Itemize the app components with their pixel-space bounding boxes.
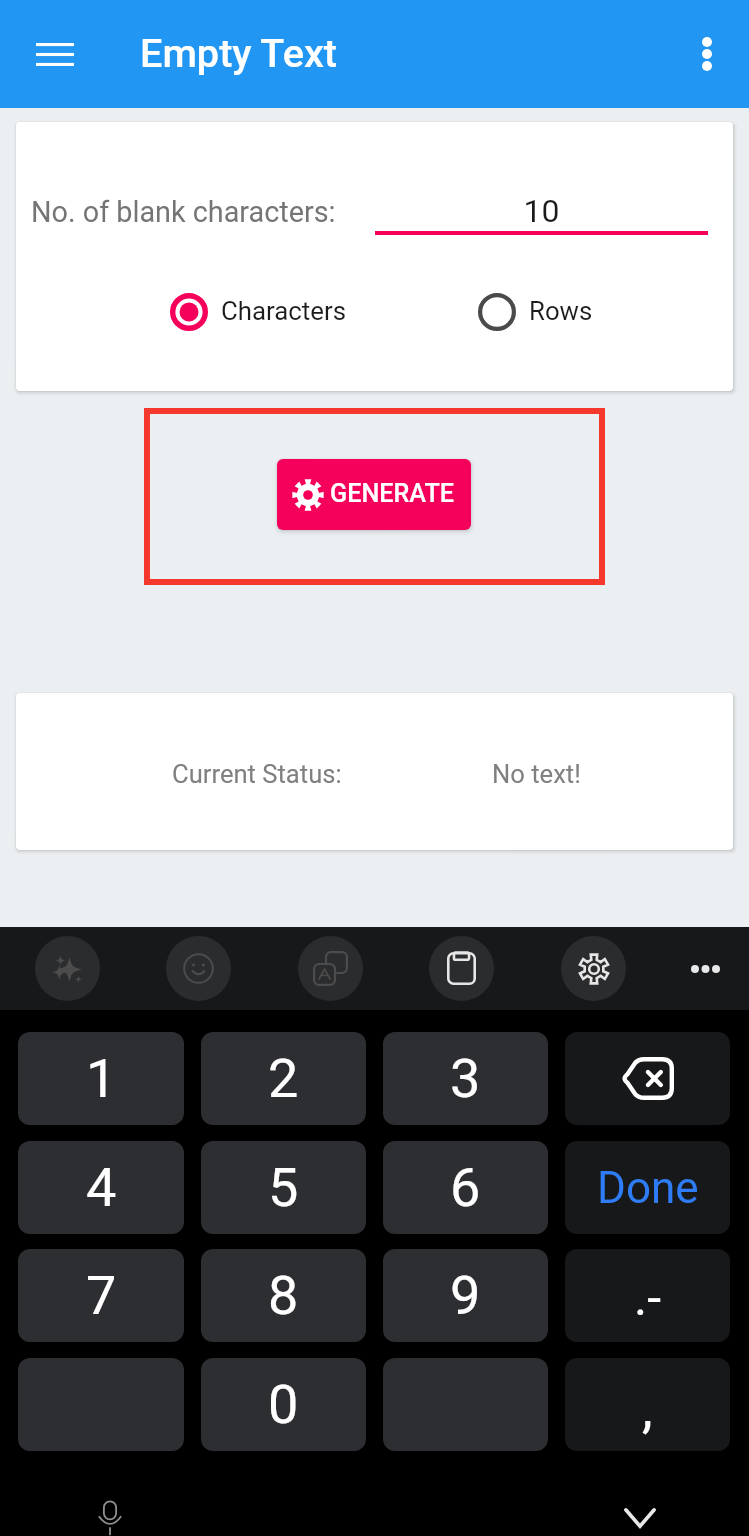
staticText: GENERATE xyxy=(330,479,455,509)
button[interactable]: Backspace xyxy=(565,1032,730,1125)
button[interactable]: 6 xyxy=(383,1141,548,1234)
button[interactable]: Open navigation drawer xyxy=(17,16,93,92)
button[interactable]: 3 xyxy=(383,1032,548,1125)
button[interactable]: More keyboard options xyxy=(673,937,737,1001)
staticText: No. of blank characters: xyxy=(31,195,336,229)
button[interactable]: 2 xyxy=(201,1032,366,1125)
staticText: .- xyxy=(634,1269,662,1328)
button[interactable]: Translate xyxy=(298,936,363,1001)
button[interactable]: 7 xyxy=(18,1249,184,1342)
button[interactable]: Emoji xyxy=(166,936,231,1001)
staticText: Current Status: xyxy=(172,759,342,789)
button[interactable]: More options xyxy=(669,16,745,92)
button[interactable]: 1 xyxy=(18,1032,184,1125)
staticText: 1 xyxy=(86,1047,117,1110)
button[interactable]: 8 xyxy=(201,1249,366,1342)
button[interactable]: Characters xyxy=(170,293,346,331)
staticText: , xyxy=(642,1377,653,1440)
staticText: Characters xyxy=(221,296,346,326)
button[interactable]: Suggestions xyxy=(35,936,100,1001)
button[interactable]: , xyxy=(565,1358,730,1451)
staticText: Empty Text xyxy=(140,30,338,76)
staticText: No text! xyxy=(492,759,581,789)
staticText: 8 xyxy=(268,1264,299,1327)
staticText: 5 xyxy=(268,1156,299,1219)
button[interactable]: .- xyxy=(565,1249,730,1342)
staticText: 10 xyxy=(375,192,708,230)
button[interactable]: 9 xyxy=(383,1249,548,1342)
button[interactable]: Blank key xyxy=(383,1358,548,1451)
button[interactable]: Settings xyxy=(561,936,626,1001)
button[interactable]: GENERATE xyxy=(277,459,471,530)
staticText: 3 xyxy=(450,1047,481,1110)
button[interactable]: Voice input xyxy=(82,1490,138,1536)
button[interactable]: Done xyxy=(565,1141,730,1234)
staticText: Rows xyxy=(529,296,593,326)
staticText: 0 xyxy=(268,1373,299,1436)
staticText: 2 xyxy=(268,1047,299,1110)
button[interactable]: Clipboard xyxy=(429,936,494,1001)
staticText: 4 xyxy=(86,1156,117,1219)
staticText: 9 xyxy=(450,1264,481,1327)
button[interactable]: Blank key xyxy=(18,1358,184,1451)
button[interactable]: Rows xyxy=(478,293,593,331)
button[interactable]: Hide keyboard xyxy=(612,1490,668,1536)
button[interactable]: 10 xyxy=(375,191,708,235)
button[interactable]: 4 xyxy=(18,1141,184,1234)
staticText: 7 xyxy=(86,1264,117,1327)
button[interactable]: 0 xyxy=(201,1358,366,1451)
button[interactable]: 5 xyxy=(201,1141,366,1234)
staticText: 6 xyxy=(450,1156,481,1219)
staticText: Done xyxy=(597,1162,699,1214)
